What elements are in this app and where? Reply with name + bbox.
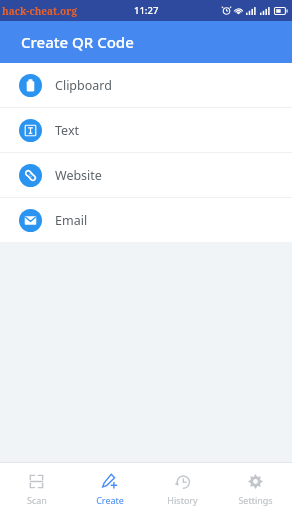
button[interactable]: Website	[0, 153, 292, 197]
button[interactable]: Email	[0, 198, 292, 242]
staticText: Email	[55, 212, 88, 229]
button[interactable]: Settings	[219, 463, 292, 516]
button[interactable]: History	[146, 463, 219, 516]
button[interactable]: Clipboard	[0, 63, 292, 107]
staticText: Create	[96, 494, 124, 506]
button[interactable]: Scan	[0, 463, 73, 516]
staticText: Scan	[27, 494, 47, 506]
staticText: History	[167, 494, 198, 506]
button[interactable]: Create	[73, 463, 146, 516]
staticText: Website	[55, 167, 102, 184]
staticText: Clipboard	[55, 77, 112, 94]
staticText: Settings	[238, 494, 273, 506]
staticText: hack-cheat.org	[2, 4, 78, 18]
staticText: Text	[55, 122, 80, 139]
button[interactable]: Text	[0, 108, 292, 152]
staticText: 11:27	[134, 4, 159, 17]
staticText: Create QR Code	[21, 32, 134, 52]
